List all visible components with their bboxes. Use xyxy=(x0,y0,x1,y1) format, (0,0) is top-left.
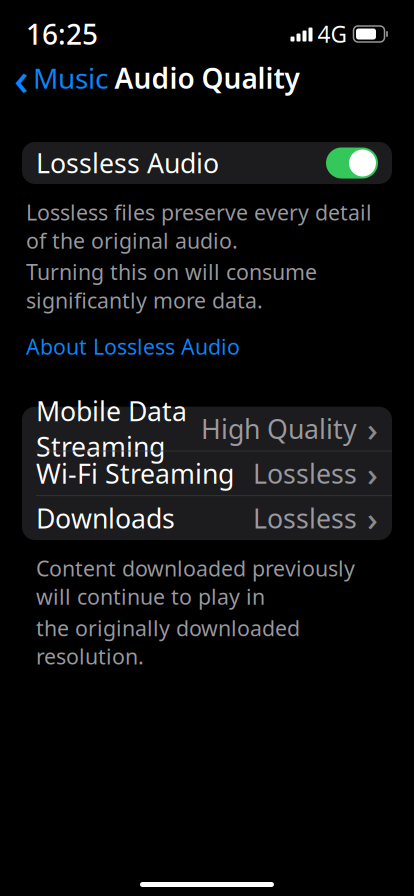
staticText: Content downloaded previously will conti… xyxy=(36,554,355,611)
button[interactable]: Mobile Data Streaming xyxy=(22,407,392,451)
staticText: 4G xyxy=(317,19,347,49)
staticText: Wi-Fi Streaming xyxy=(36,456,234,491)
staticText: › xyxy=(367,451,378,495)
staticText: Lossless Audio xyxy=(36,145,219,181)
staticText: Lossless xyxy=(253,500,357,536)
staticText: 16:25 xyxy=(26,15,98,53)
staticText: ‹ xyxy=(14,48,29,108)
button[interactable]: About Lossless Audio xyxy=(26,326,240,367)
staticText: Turning this on will consume significant… xyxy=(26,258,317,314)
staticText: Audio Quality xyxy=(114,59,299,97)
staticText: About Lossless Audio xyxy=(26,332,240,361)
button[interactable]: Lossless Audio xyxy=(22,142,392,184)
staticText: Downloads xyxy=(36,500,175,536)
staticText: Lossless files preserve every detail of … xyxy=(26,198,372,255)
staticText: › xyxy=(367,406,378,451)
button[interactable]: Downloads xyxy=(22,496,392,540)
button[interactable]: ‹ xyxy=(14,42,118,114)
staticText: Mobile Data Streaming xyxy=(36,393,187,464)
staticText: High Quality xyxy=(201,411,357,446)
staticText: Music xyxy=(33,59,108,97)
button[interactable]: Wi-Fi Streaming xyxy=(22,451,392,495)
staticText: › xyxy=(367,496,378,540)
staticText: the originally downloaded resolution. xyxy=(36,614,300,670)
staticText: Lossless xyxy=(253,456,357,491)
